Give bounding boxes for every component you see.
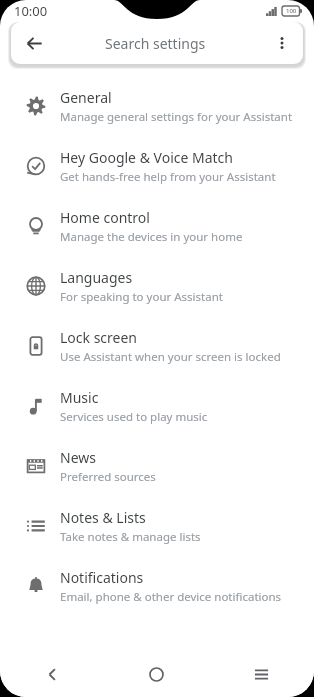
button[interactable]: Recent apps (209, 651, 314, 697)
staticText: Preferred sources (60, 469, 156, 485)
staticText: Lock screen (60, 328, 138, 347)
staticText: General (60, 88, 112, 107)
button[interactable]: Notes & Lists (0, 496, 314, 556)
button[interactable]: Back (11, 22, 303, 64)
staticText: Languages (60, 268, 133, 287)
staticText: Hey Google & Voice Match (60, 148, 233, 167)
staticText: Search settings (105, 34, 206, 53)
staticText: Home control (60, 208, 150, 227)
staticText: Notes & Lists (60, 508, 146, 527)
staticText: Manage the devices in your home (60, 229, 243, 245)
staticText: Music (60, 388, 99, 407)
staticText: Services used to play music (60, 409, 208, 425)
button[interactable]: Music (0, 376, 314, 436)
staticText: News (60, 448, 96, 467)
staticText: Get hands-free help from your Assistant (60, 169, 276, 185)
button[interactable]: Hey Google & Voice Match (0, 136, 314, 196)
staticText: Notifications (60, 568, 144, 587)
button[interactable]: Notifications (0, 556, 314, 616)
staticText: Take notes & manage lists (60, 529, 201, 545)
button[interactable]: Back (17, 26, 51, 60)
staticText: Email, phone & other device notification… (60, 589, 282, 605)
button[interactable]: General (0, 76, 314, 136)
button[interactable]: Back (0, 651, 104, 697)
button[interactable]: Home control (0, 196, 314, 256)
button[interactable]: News (0, 436, 314, 496)
staticText: 10:00 (14, 2, 48, 20)
staticText: 100 (286, 7, 297, 15)
button[interactable]: Languages (0, 256, 314, 316)
button[interactable]: Home (104, 651, 209, 697)
button[interactable]: More options (266, 27, 298, 59)
staticText: Use Assistant when your screen is locked (60, 349, 281, 365)
button[interactable]: Lock screen (0, 316, 314, 376)
staticText: Manage general settings for your Assista… (60, 109, 293, 125)
staticText: For speaking to your Assistant (60, 289, 223, 305)
